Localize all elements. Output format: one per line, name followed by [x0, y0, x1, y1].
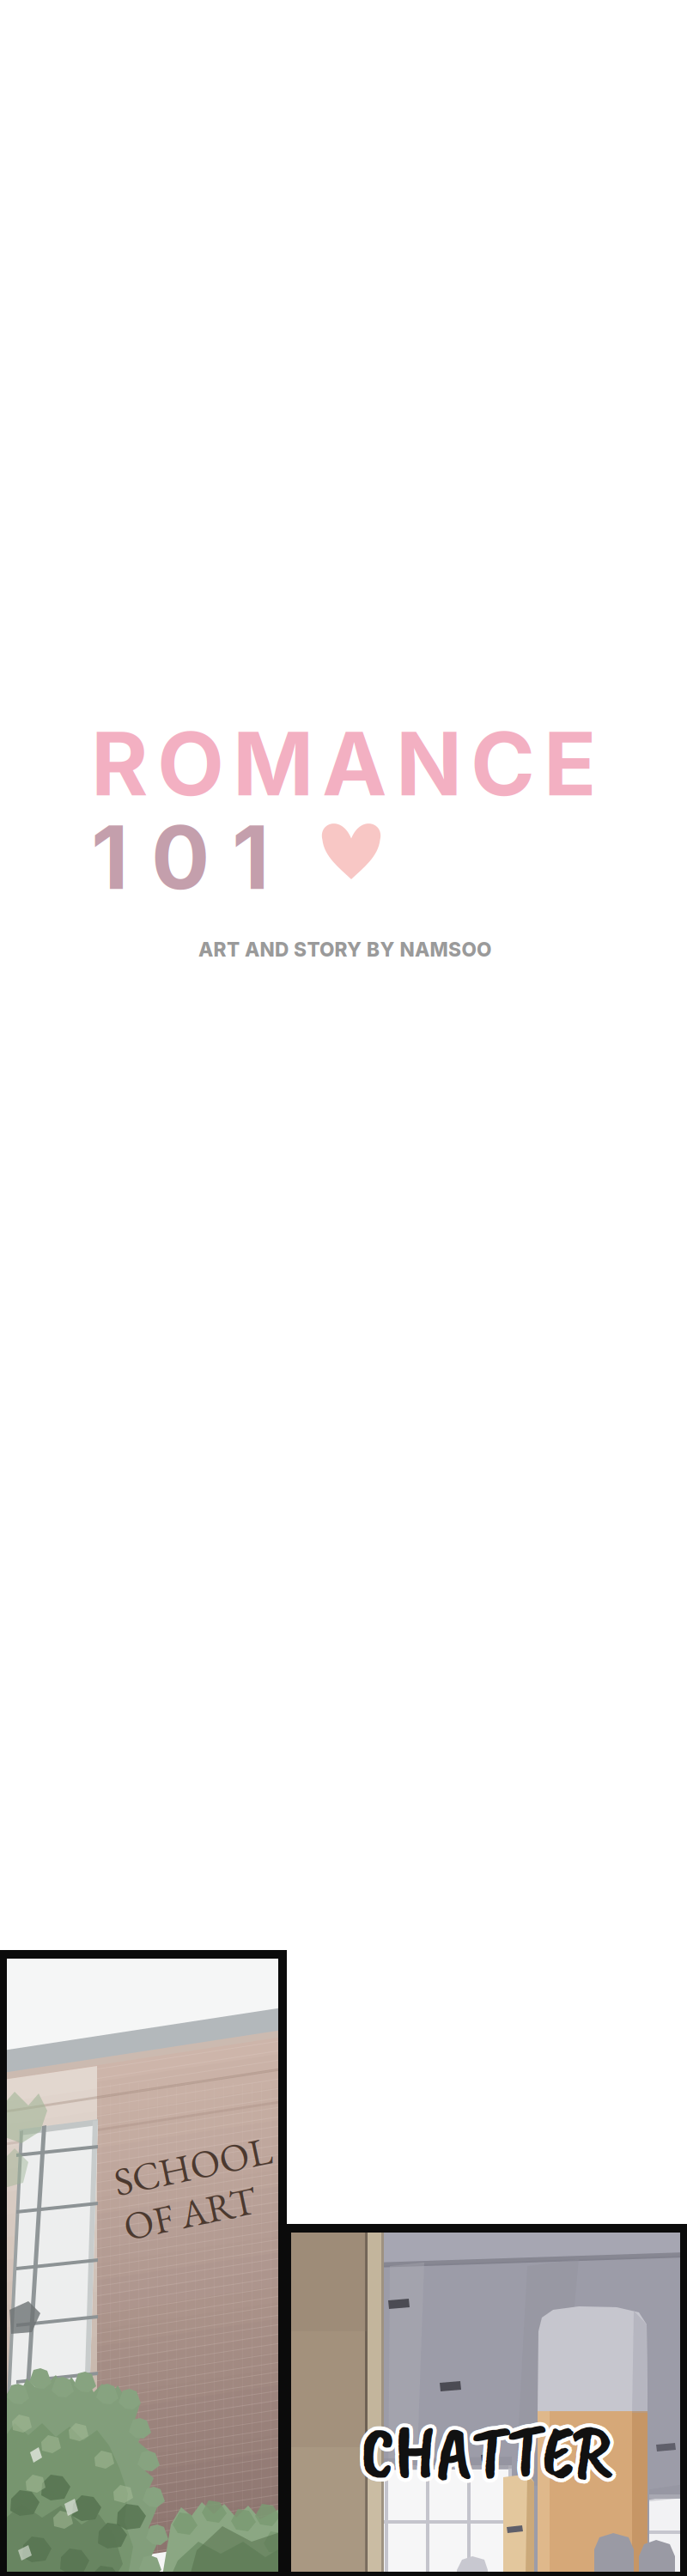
staticText: CHATTER — [361, 2400, 611, 2496]
staticText: CHATTER — [359, 2408, 609, 2503]
staticText: OF ART — [118, 2185, 252, 2236]
staticText: SCHOOL — [118, 2140, 277, 2191]
staticText: CHATTER — [363, 2408, 612, 2503]
staticText: ROMANCE — [91, 711, 597, 816]
staticText: 101 — [91, 805, 270, 910]
staticText: CHATTER — [364, 2402, 614, 2498]
staticText: ART AND STORY BY NAMSOO — [198, 938, 491, 961]
staticText: CHATTER — [357, 2404, 607, 2499]
staticText: CHATTER — [357, 2406, 607, 2501]
staticText: CHATTER — [361, 2404, 611, 2499]
staticText: CHATTER — [365, 2404, 614, 2499]
staticText: CHATTER — [364, 2406, 614, 2501]
staticText: CHATTER — [361, 2408, 611, 2503]
staticText: CHATTER — [357, 2402, 607, 2498]
staticText: CHATTER — [359, 2401, 609, 2496]
staticText: CHATTER — [363, 2401, 612, 2496]
